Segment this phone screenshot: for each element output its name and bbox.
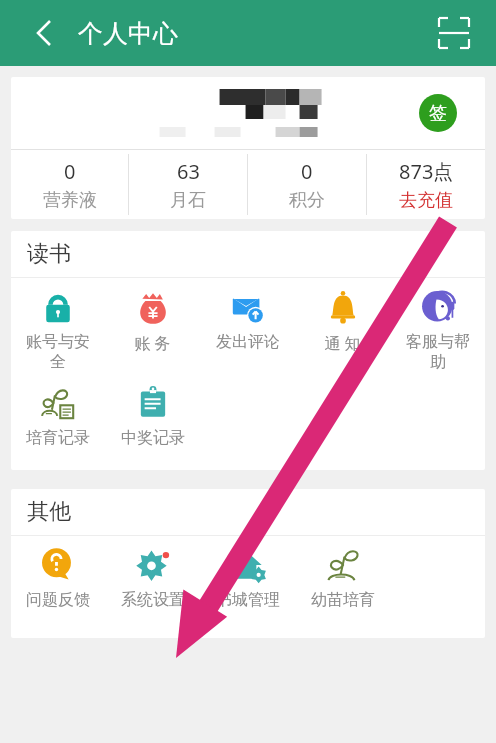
button[interactable]: 873点	[367, 150, 485, 219]
staticText: 去充值	[399, 189, 453, 212]
staticText: 书城管理	[216, 590, 280, 610]
button[interactable]: 发出评论	[200, 278, 295, 374]
button[interactable]: 通 知	[295, 278, 390, 374]
button[interactable]: 系统设置	[105, 536, 200, 632]
button[interactable]: 账 务	[105, 278, 200, 374]
staticText: 读书	[27, 240, 71, 268]
staticText: 个人中心	[78, 18, 178, 49]
staticText: 月石	[170, 189, 206, 212]
staticText: 0	[301, 158, 313, 185]
staticText: 营养液	[43, 189, 97, 212]
staticText: 账 务	[134, 332, 171, 354]
button[interactable]: 问题反馈	[11, 536, 105, 632]
button[interactable]: 签	[419, 94, 457, 132]
staticText: 培育记录	[26, 428, 90, 448]
staticText: 中奖记录	[121, 428, 185, 448]
button[interactable]: 培育记录	[11, 374, 105, 466]
button[interactable]: Back	[24, 13, 64, 53]
staticText: 账号与安 全	[26, 332, 90, 372]
staticText: 签	[429, 102, 447, 125]
button[interactable]: 幼苗培育	[295, 536, 390, 632]
button[interactable]: 客服与帮 助	[390, 278, 485, 374]
staticText: 其他	[27, 498, 71, 526]
button[interactable]: Scan	[432, 11, 476, 55]
staticText: 积分	[289, 189, 325, 212]
staticText: 发出评论	[216, 332, 280, 352]
staticText: 系统设置	[121, 590, 185, 610]
button[interactable]: 63	[129, 150, 247, 219]
staticText: 873点	[399, 158, 454, 185]
button[interactable]: 账号与安 全	[11, 278, 105, 374]
button[interactable]: 书城管理	[200, 536, 295, 632]
staticText: 通 知	[324, 332, 361, 354]
button[interactable]: 0	[11, 150, 128, 219]
button[interactable]: 0	[248, 150, 366, 219]
staticText: 0	[64, 158, 76, 185]
staticText: 幼苗培育	[311, 590, 375, 610]
staticText: 客服与帮 助	[406, 332, 470, 372]
staticText: 63	[177, 158, 200, 185]
button[interactable]: 中奖记录	[105, 374, 200, 466]
staticText: 问题反馈	[26, 590, 90, 610]
